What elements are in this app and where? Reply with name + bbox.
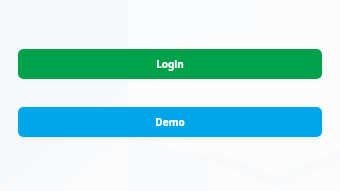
button[interactable]: Login (18, 49, 322, 79)
staticText: Login (156, 57, 184, 71)
button[interactable]: Demo (18, 107, 322, 137)
staticText: Demo (155, 115, 185, 129)
